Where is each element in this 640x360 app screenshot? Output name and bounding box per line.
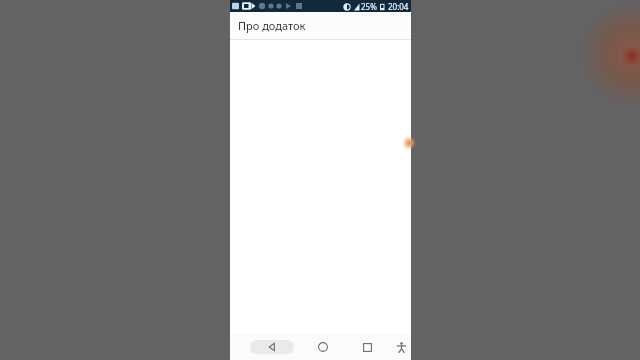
button[interactable]: Accessibility menu: [392, 338, 410, 356]
button[interactable]: Home: [314, 338, 332, 356]
staticText: 25%: [361, 1, 377, 12]
button[interactable]: Recent apps: [358, 338, 376, 356]
button[interactable]: Back: [250, 340, 294, 354]
staticText: Про додаток: [238, 18, 306, 33]
staticText: 20:04: [388, 1, 409, 12]
